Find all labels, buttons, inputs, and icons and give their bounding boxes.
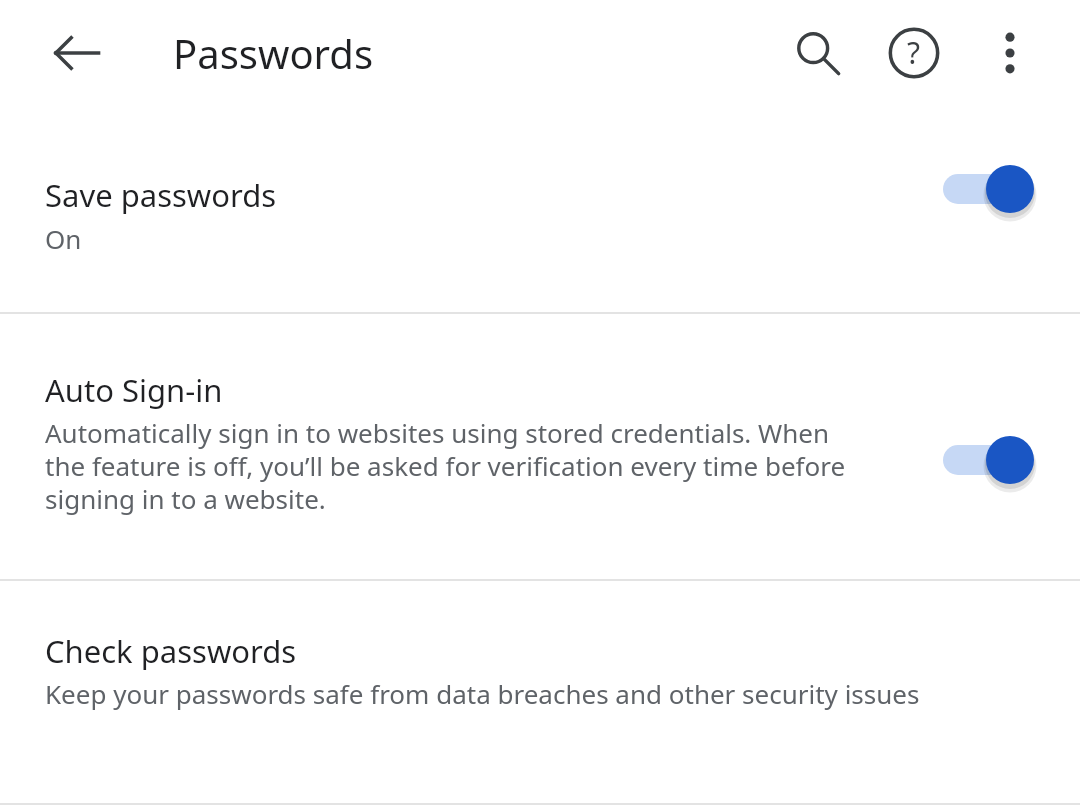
button[interactable]: Toggle xyxy=(943,153,1047,225)
button[interactable]: Check passwords xyxy=(0,581,1080,803)
button[interactable]: Help xyxy=(866,5,962,101)
staticText: Check passwords xyxy=(45,633,297,671)
button[interactable]: Toggle xyxy=(943,424,1047,496)
staticText: ? xyxy=(907,32,921,73)
button[interactable]: Search xyxy=(770,5,866,101)
staticText: Passwords xyxy=(173,26,374,80)
button[interactable]: Auto Sign-in xyxy=(0,314,1080,579)
staticText: Automatically sign in to websites using … xyxy=(45,417,855,516)
staticText: Auto Sign-in xyxy=(45,372,223,410)
staticText: On xyxy=(45,223,82,256)
button[interactable]: Save passwords xyxy=(0,105,1080,312)
button[interactable]: Back xyxy=(29,5,125,101)
staticText: Keep your passwords safe from data breac… xyxy=(45,678,920,711)
staticText: Save passwords xyxy=(45,177,277,215)
button[interactable]: More options xyxy=(962,5,1058,101)
